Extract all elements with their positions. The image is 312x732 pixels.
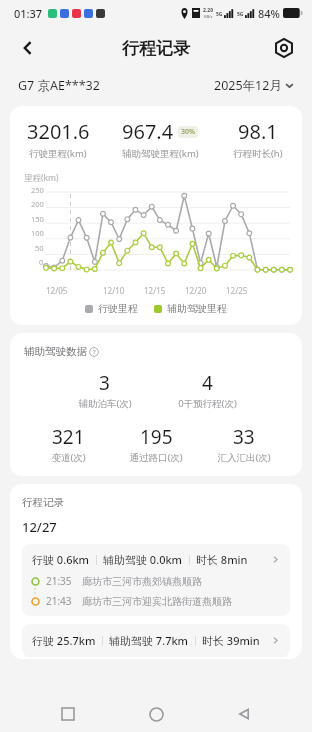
staticText: 辅助泊车(次) bbox=[78, 397, 132, 410]
staticText: 辅助驾驶里程(km) bbox=[122, 147, 199, 160]
staticText: 辅助驾驶 0.0km bbox=[103, 552, 183, 567]
staticText: 12/27 bbox=[22, 518, 57, 536]
staticText: 行程时长(h) bbox=[233, 147, 283, 160]
button[interactable]: 行驶 0.6km bbox=[22, 544, 290, 616]
staticText: G7 京AE***32 bbox=[18, 77, 100, 94]
staticText: 辅助驾驶数据 bbox=[24, 345, 87, 358]
staticText: 321 bbox=[52, 424, 85, 450]
staticText: 汇入汇出(次) bbox=[217, 451, 271, 464]
staticText: 150 bbox=[31, 214, 44, 224]
staticText: 967.4 bbox=[122, 118, 174, 145]
staticText: 84% bbox=[258, 6, 280, 21]
staticText: 5G bbox=[237, 11, 244, 18]
staticText: 30% bbox=[181, 127, 195, 137]
staticText: 50 bbox=[35, 243, 44, 253]
staticText: 里程(km) bbox=[24, 172, 59, 184]
staticText: 辅助驾驶里程 bbox=[167, 302, 227, 315]
staticText: 3201.6 bbox=[27, 118, 90, 145]
button[interactable]: 行驶 25.7km bbox=[22, 624, 290, 657]
button[interactable]: 2025年12月 bbox=[214, 77, 294, 94]
staticText: 21:43 bbox=[46, 594, 72, 608]
button[interactable]: Info bbox=[89, 347, 99, 357]
staticText: 2025年12月 bbox=[214, 77, 282, 94]
button[interactable]: Back bbox=[8, 28, 48, 68]
staticText: 0干预行程(次) bbox=[178, 397, 237, 410]
staticText: 5G bbox=[216, 11, 223, 18]
staticText: 行程记录 bbox=[22, 496, 64, 509]
staticText: 行驶 0.6km bbox=[32, 552, 90, 567]
staticText: 12/10 bbox=[103, 285, 125, 296]
staticText: 01:37 bbox=[14, 6, 43, 21]
staticText: 33 bbox=[233, 424, 255, 450]
staticText: 21:35 bbox=[46, 574, 72, 588]
staticText: 廊坊市三河市迎宾北路街道燕顺路 bbox=[82, 595, 232, 608]
staticText: 行程记录 bbox=[122, 38, 190, 59]
staticText: 通过路口(次) bbox=[129, 451, 183, 464]
staticText: 时长 8min bbox=[196, 552, 248, 567]
staticText: 廊坊市三河市燕郊镇燕顺路 bbox=[82, 575, 202, 588]
staticText: ? bbox=[93, 348, 96, 356]
staticText: 12/15 bbox=[144, 285, 166, 296]
staticText: 行驶里程 bbox=[98, 302, 138, 315]
staticText: 3 bbox=[99, 370, 110, 396]
staticText: 200 bbox=[31, 199, 44, 209]
staticText: KB/s bbox=[204, 14, 213, 19]
staticText: 辅助驾驶 7.7km bbox=[109, 633, 189, 648]
staticText: 行驶里程(km) bbox=[29, 147, 87, 160]
staticText: 变道(次) bbox=[51, 451, 86, 464]
button[interactable]: Recents bbox=[48, 696, 88, 732]
staticText: 时长 39min bbox=[202, 633, 260, 648]
staticText: 12/05 bbox=[46, 285, 68, 296]
staticText: 行驶 25.7km bbox=[32, 633, 96, 648]
staticText: 4 bbox=[202, 370, 213, 396]
staticText: 12/20 bbox=[185, 285, 207, 296]
staticText: 12/25 bbox=[226, 285, 248, 296]
button[interactable]: Back bbox=[224, 696, 264, 732]
staticText: 100 bbox=[31, 228, 44, 238]
button[interactable]: Home bbox=[136, 696, 176, 732]
staticText: 98.1 bbox=[238, 118, 278, 145]
button[interactable]: Settings bbox=[264, 28, 304, 68]
staticText: 250 bbox=[31, 185, 44, 195]
staticText: 2.20 bbox=[203, 7, 213, 14]
staticText: 195 bbox=[140, 424, 173, 450]
staticText: 0 bbox=[39, 257, 44, 267]
